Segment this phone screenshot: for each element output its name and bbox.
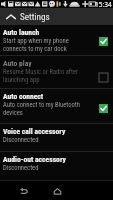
staticText: Auto connect	[3, 92, 44, 101]
button[interactable]: Up	[0, 8, 113, 25]
button[interactable]: Voice call accessory	[0, 124, 113, 152]
staticText: devices	[3, 109, 23, 117]
button[interactable]: Toggle	[99, 104, 108, 113]
button[interactable]: Back	[4, 181, 42, 200]
staticText: Audio-out accessory	[3, 155, 66, 164]
staticText: Resume Music or Radio after	[3, 68, 78, 76]
staticText: launching app	[3, 76, 40, 84]
staticText: Disconnected	[3, 136, 39, 144]
button[interactable]: Auto connect	[0, 89, 113, 124]
staticText: Disconnected	[3, 164, 39, 172]
button[interactable]: Toggle	[99, 37, 108, 46]
button[interactable]: Auto launch	[0, 25, 113, 56]
staticText: Settings	[20, 11, 50, 22]
staticText: Auto play	[3, 59, 32, 68]
other: Up	[6, 12, 16, 22]
staticText: Start app when my phone	[3, 37, 69, 45]
button[interactable]: Toggle	[99, 73, 108, 82]
button[interactable]: Home	[38, 181, 76, 200]
staticText: Auto connect to my Bluetooth	[3, 101, 80, 109]
button[interactable]: Audio-out accessory	[0, 152, 113, 181]
staticText: 15:34	[95, 0, 112, 8]
staticText: Voice call accessory	[3, 127, 66, 136]
staticText: connects to my car dock	[3, 45, 67, 53]
button[interactable]: Auto play	[0, 56, 113, 89]
staticText: Auto launch	[3, 28, 40, 37]
